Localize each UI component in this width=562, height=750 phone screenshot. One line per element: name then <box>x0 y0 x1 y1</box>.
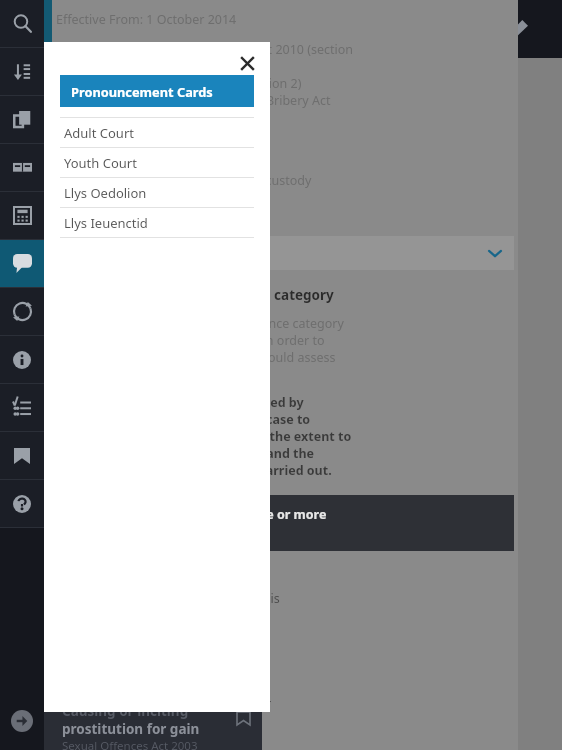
button[interactable]: Youth Court <box>60 147 254 177</box>
button[interactable]: Applicability fraud <box>56 236 514 270</box>
staticText: A leading role where offending is <box>86 590 280 607</box>
staticText: Adult Court <box>64 124 134 142</box>
staticText: determine the offender’s role and the ex… <box>56 428 352 445</box>
staticText: Bribery of foreign public officials, Bri… <box>56 92 331 109</box>
button[interactable]: Refresh <box>0 288 44 335</box>
staticText: Effective From: 1 October 2014 <box>56 11 237 28</box>
button[interactable]: Guidelines <box>0 144 44 191</box>
staticText: Pronouncement Cards <box>71 83 213 100</box>
button[interactable]: Llys Oedolion <box>60 177 254 207</box>
staticText: Causing or inciting <box>62 702 189 720</box>
staticText: Bribing another person, Bribery Act 2010… <box>56 41 354 58</box>
button[interactable]: Copy <box>0 96 44 143</box>
button[interactable]: User guide for this offence <box>56 201 213 218</box>
staticText: Intended corruption (directly or <box>86 747 272 749</box>
button[interactable]: Bookmarks <box>0 432 44 479</box>
button[interactable]: Close dialog <box>234 50 260 76</box>
staticText: indirectly) of a senior official <box>86 712 252 729</box>
button[interactable]: Highlight <box>474 0 562 58</box>
staticText: sophistication with which it was carried… <box>56 462 332 479</box>
staticText: Bribery <box>74 4 128 24</box>
staticText: determine the category the court should … <box>56 349 336 366</box>
staticText: 2010 (section 6) <box>56 109 148 126</box>
staticText: Llys Ieuenctid <box>64 214 148 232</box>
staticText: The level of culpability is determined b… <box>56 394 304 411</box>
staticText: Being bribed, Bribery Act 2010 (section … <box>56 75 302 92</box>
button[interactable]: Llys Ieuenctid <box>60 207 254 237</box>
staticText: which the offending was planned and the <box>56 445 315 462</box>
button[interactable]: Next <box>0 692 44 750</box>
button[interactable]: Checklist <box>0 384 44 431</box>
staticText: The court should determine the offence c… <box>56 315 344 332</box>
staticText: Youth Court <box>64 154 137 172</box>
staticText: prostitution for gain <box>62 720 200 738</box>
staticText: performing a public function <box>86 729 255 746</box>
button[interactable]: Sort A to Z <box>0 48 44 95</box>
staticText: Offence range: Discharge – 8 years’ cust… <box>56 172 312 189</box>
staticText: Step 1- Determining the offence category <box>56 286 334 304</box>
staticText: weighing up all the factors of the case … <box>56 411 311 428</box>
staticText: Close <box>82 7 114 24</box>
button[interactable]: Adult Court <box>60 117 254 147</box>
staticText: Maximum: 10 years’ custody <box>56 155 223 172</box>
button[interactable]: Close <box>60 0 562 31</box>
button[interactable]: Information <box>0 336 44 383</box>
staticText: User guide for this offence <box>56 201 213 218</box>
staticText: Sexual Offences Act 2003 <box>62 738 198 750</box>
staticText: Triable either way <box>56 138 161 155</box>
staticText: Llys Oedolion <box>64 184 147 202</box>
button[interactable]: Pronouncement <box>0 240 44 287</box>
staticText: Intended corruption (directly or <box>86 695 272 712</box>
staticText: with reference to the tables below. In o… <box>56 332 325 349</box>
staticText: Culpability demonstrated by one or more <box>70 506 327 523</box>
button[interactable]: Search <box>0 0 44 47</box>
button[interactable]: Calculator <box>0 192 44 239</box>
button[interactable]: Help <box>0 480 44 527</box>
button[interactable]: Pronouncement Cards <box>60 75 254 107</box>
staticText: Bribery Act 2010, s.1Bribery Act 2010, s… <box>74 26 356 43</box>
